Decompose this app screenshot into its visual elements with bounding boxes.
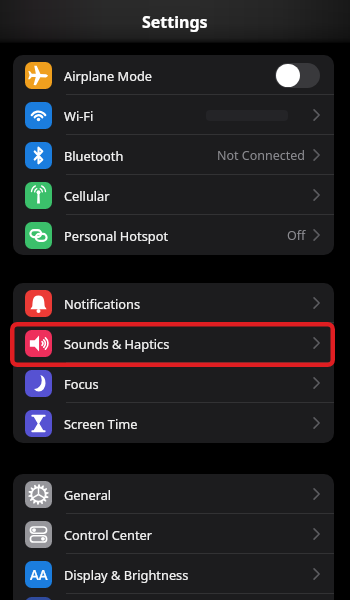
button[interactable]: Airplane Mode [13,55,334,95]
staticText: Notifications [64,295,141,312]
button[interactable]: Bluetooth [13,135,334,175]
button[interactable]: Home Screen [13,594,334,600]
button[interactable]: AA [13,554,334,594]
button[interactable]: Screen Time [13,403,334,443]
button[interactable]: Personal Hotspot [13,215,334,255]
staticText: Settings [142,11,208,33]
staticText: Cellular [64,187,110,204]
button[interactable]: Wi-Fi [13,95,334,135]
staticText: Personal Hotspot [64,227,169,244]
staticText: Off [287,227,306,244]
staticText: Control Center [64,526,153,543]
staticText: Focus [64,375,99,392]
staticText: Not Connected [217,147,306,164]
staticText: Airplane Mode [64,67,153,84]
staticText: AA [30,566,48,584]
staticText: Display & Brightness [64,566,189,583]
staticText: General [64,486,112,503]
button[interactable]: Airplane Mode toggle [275,63,320,88]
button[interactable]: Focus [13,363,334,403]
button[interactable]: Cellular [13,175,334,215]
staticText: Screen Time [64,415,138,432]
staticText: Bluetooth [64,147,124,164]
button[interactable]: Control Center [13,514,334,554]
button[interactable]: Notifications [13,283,334,323]
staticText: Sounds & Haptics [64,335,170,352]
staticText: Wi-Fi [64,107,94,124]
button[interactable]: Sounds & Haptics [13,323,334,363]
button[interactable]: General [13,474,334,514]
